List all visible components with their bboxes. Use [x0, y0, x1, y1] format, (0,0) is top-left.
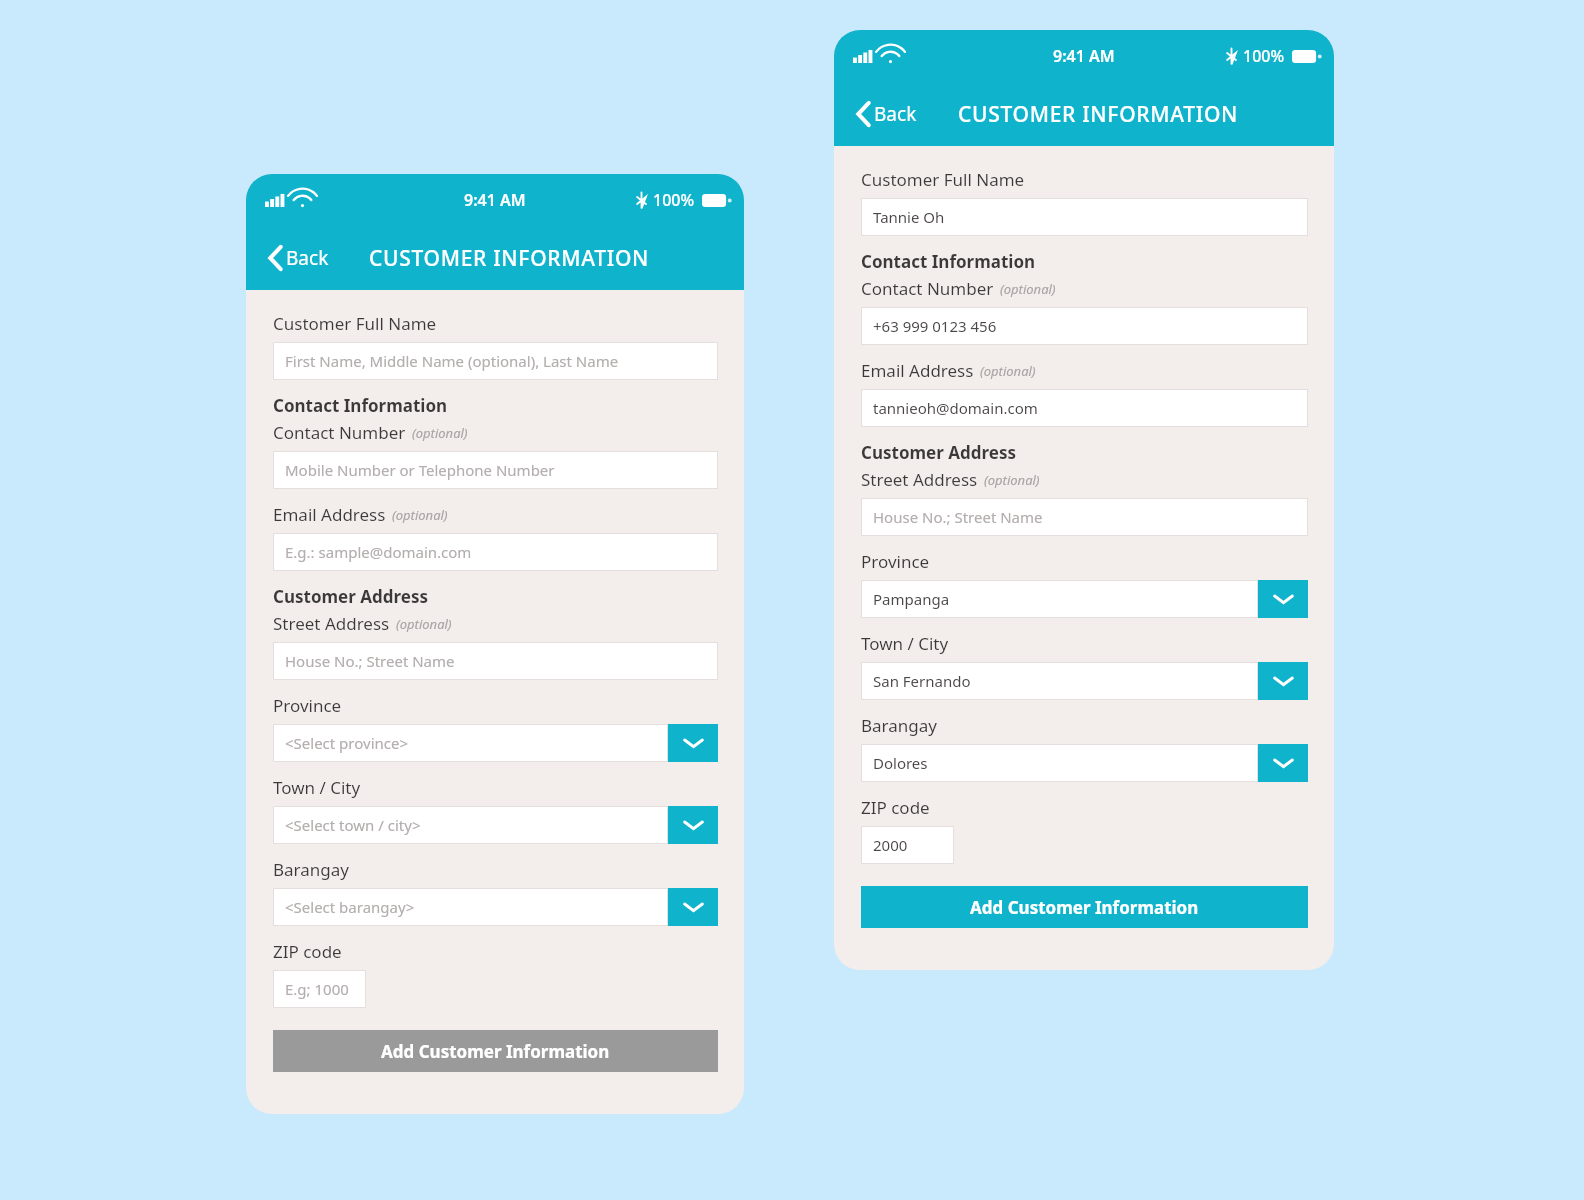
staticText: <Select town / city>: [285, 815, 421, 835]
staticText: Customer Full Name: [861, 168, 1025, 191]
button[interactable]: tannieoh@domain.com: [861, 389, 1308, 427]
staticText: 100%: [1243, 45, 1285, 67]
staticText: Add Customer Information: [381, 1040, 610, 1063]
button[interactable]: Back: [850, 93, 923, 135]
staticText: Contact Number: [273, 421, 406, 444]
button[interactable]: Select option: [861, 662, 1308, 700]
button[interactable]: Tannie Oh: [861, 198, 1308, 236]
staticText: <Select barangay>: [285, 897, 415, 917]
button[interactable]: House No.; Street Name: [273, 642, 718, 680]
staticText: Contact Number: [861, 277, 994, 300]
button[interactable]: Add Customer Information: [273, 1030, 718, 1072]
staticText: First Name, Middle Name (optional), Last…: [285, 351, 619, 371]
staticText: 9:41 AM: [1053, 45, 1115, 67]
button[interactable]: Select option: [861, 744, 1308, 782]
staticText: ZIP code: [273, 940, 342, 963]
button[interactable]: First Name, Middle Name (optional), Last…: [273, 342, 718, 380]
staticText: (optional): [412, 424, 468, 442]
staticText: CUSTOMER INFORMATION: [369, 244, 650, 273]
button[interactable]: Add Customer Information: [861, 886, 1308, 928]
button[interactable]: Select option: [273, 724, 718, 762]
staticText: Province: [861, 550, 930, 573]
staticText: Province: [273, 694, 342, 717]
staticText: Barangay: [861, 714, 937, 737]
staticText: Contact Information: [861, 250, 1036, 273]
button[interactable]: Select option: [273, 888, 718, 926]
staticText: Pampanga: [873, 589, 950, 609]
button[interactable]: Select option: [273, 806, 718, 844]
staticText: Customer Address: [273, 585, 428, 608]
staticText: Street Address: [861, 468, 978, 491]
staticText: Mobile Number or Telephone Number: [285, 460, 555, 480]
staticText: E.g; 1000: [285, 979, 349, 999]
staticText: (optional): [980, 362, 1036, 380]
staticText: 9:41 AM: [464, 189, 526, 211]
staticText: (optional): [984, 471, 1040, 489]
staticText: Add Customer Information: [970, 896, 1199, 919]
button[interactable]: E.g; 1000: [273, 970, 366, 1008]
staticText: Barangay: [273, 858, 349, 881]
staticText: tannieoh@domain.com: [873, 398, 1038, 418]
button[interactable]: 2000: [861, 826, 954, 864]
staticText: 100%: [653, 189, 695, 211]
staticText: 2000: [873, 835, 908, 855]
staticText: San Fernando: [873, 671, 971, 691]
staticText: (optional): [396, 615, 452, 633]
staticText: Email Address: [273, 503, 386, 526]
button[interactable]: Select option: [861, 580, 1308, 618]
staticText: <Select province>: [285, 733, 409, 753]
staticText: House No.; Street Name: [285, 651, 455, 671]
button[interactable]: House No.; Street Name: [861, 498, 1308, 536]
staticText: CUSTOMER INFORMATION: [958, 100, 1239, 129]
staticText: ZIP code: [861, 796, 930, 819]
button[interactable]: Mobile Number or Telephone Number: [273, 451, 718, 489]
button[interactable]: Back: [262, 237, 335, 279]
staticText: Back: [286, 245, 329, 271]
staticText: Email Address: [861, 359, 974, 382]
staticText: Tannie Oh: [873, 207, 945, 227]
staticText: Customer Address: [861, 441, 1016, 464]
button[interactable]: E.g.: sample@domain.com: [273, 533, 718, 571]
staticText: Customer Full Name: [273, 312, 437, 335]
staticText: Town / City: [861, 632, 949, 655]
staticText: Street Address: [273, 612, 390, 635]
button[interactable]: +63 999 0123 456: [861, 307, 1308, 345]
staticText: +63 999 0123 456: [873, 316, 997, 336]
staticText: Dolores: [873, 753, 928, 773]
staticText: Town / City: [273, 776, 361, 799]
staticText: (optional): [392, 506, 448, 524]
staticText: (optional): [1000, 280, 1056, 298]
staticText: E.g.: sample@domain.com: [285, 542, 472, 562]
staticText: Back: [874, 101, 917, 127]
staticText: House No.; Street Name: [873, 507, 1043, 527]
staticText: Contact Information: [273, 394, 448, 417]
